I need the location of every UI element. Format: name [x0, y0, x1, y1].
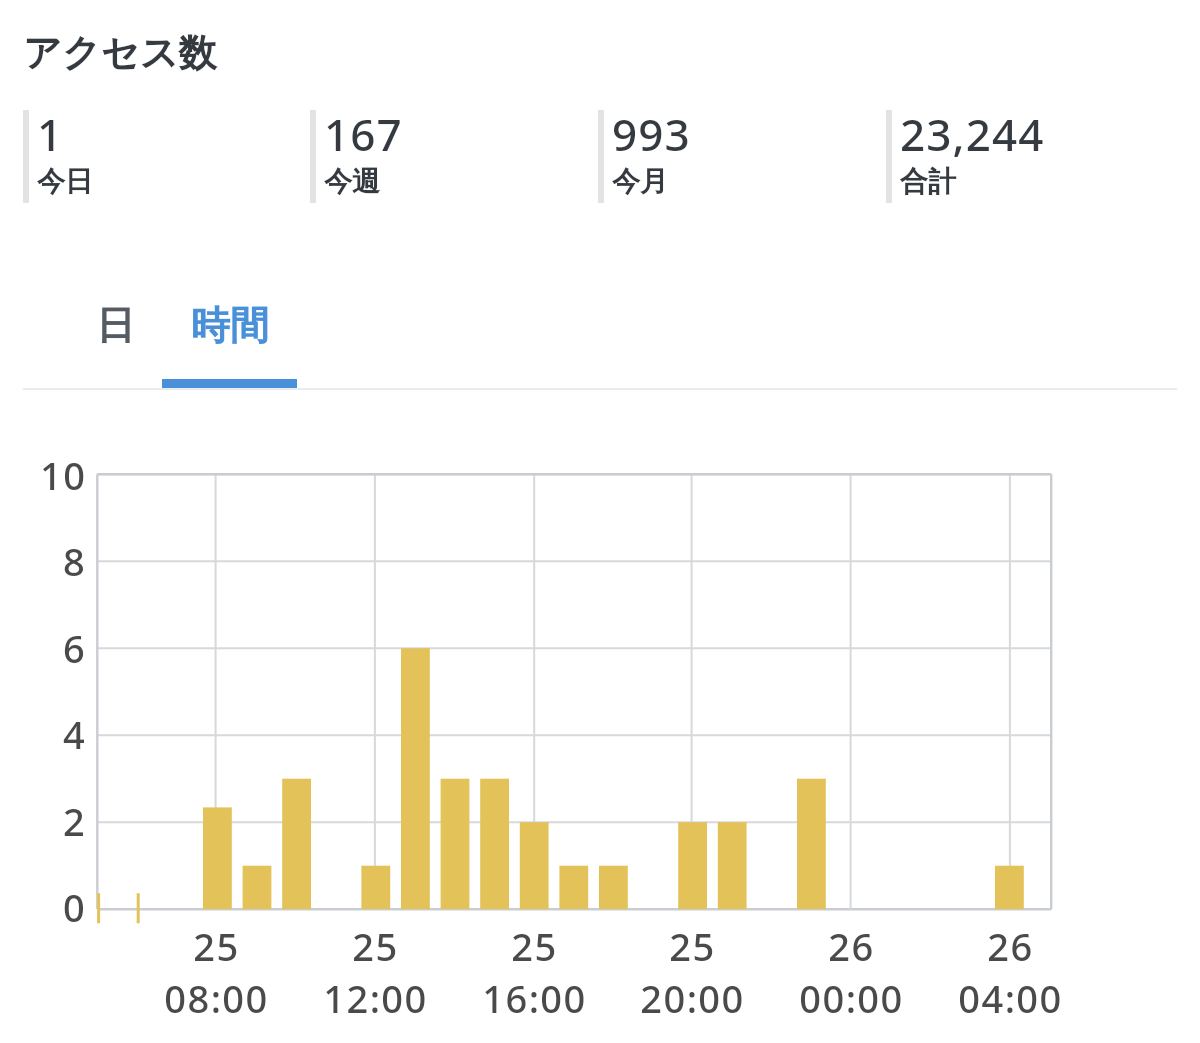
staticText: 4	[63, 708, 87, 760]
staticText: 今日	[37, 164, 93, 199]
staticText: 25	[352, 920, 399, 972]
staticText: 時間	[191, 301, 269, 350]
staticText: 20:00	[640, 972, 745, 1024]
button[interactable]: 993	[598, 104, 886, 199]
staticText: 25	[193, 920, 240, 972]
staticText: 04:00	[958, 972, 1063, 1024]
staticText: アクセス数	[23, 29, 217, 77]
staticText: 167	[324, 104, 403, 164]
staticText: 今週	[324, 164, 380, 199]
staticText: 2	[63, 795, 87, 847]
staticText: 日	[96, 301, 135, 350]
staticText: 23,244	[900, 104, 1045, 164]
staticText: 合計	[900, 164, 956, 199]
button[interactable]: 167	[310, 104, 598, 199]
staticText: 0	[63, 881, 87, 933]
button[interactable]: 23,244	[886, 104, 1174, 199]
staticText: 00:00	[799, 972, 904, 1024]
staticText: 8	[63, 535, 87, 587]
staticText: 6	[63, 622, 87, 674]
staticText: 08:00	[164, 972, 269, 1024]
button[interactable]: 時間	[162, 289, 297, 361]
staticText: 25	[669, 920, 716, 972]
staticText: 993	[612, 104, 691, 164]
button[interactable]: 日	[68, 289, 162, 361]
staticText: 1	[37, 104, 64, 164]
button[interactable]: 1	[23, 104, 310, 199]
staticText: 25	[511, 920, 558, 972]
staticText: 12:00	[323, 972, 428, 1024]
staticText: 10	[40, 449, 87, 501]
staticText: 16:00	[482, 972, 587, 1024]
staticText: 26	[828, 920, 875, 972]
staticText: 26	[987, 920, 1034, 972]
staticText: 今月	[612, 164, 668, 199]
other: Hourly access chart	[0, 0, 1200, 1043]
